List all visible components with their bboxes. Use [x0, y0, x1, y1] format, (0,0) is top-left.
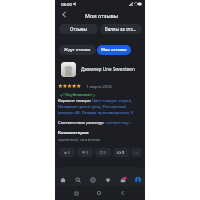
button[interactable]: Поиск [70, 170, 85, 186]
staticText: Комментарии [58, 130, 89, 136]
staticText: Опубликован [65, 92, 92, 98]
staticText: Мои отзывы [85, 12, 119, 19]
button[interactable]: Фото [113, 148, 129, 157]
button[interactable]: Ждут отзыва [59, 45, 96, 55]
button[interactable]: Главная [55, 170, 70, 186]
staticText: Джемпер Line Seventeen [81, 66, 135, 72]
staticText: Вариант товара: Цвет товара: серый, Назв… [58, 98, 142, 116]
staticText: 0 [68, 150, 71, 155]
button[interactable]: Профиль [130, 170, 145, 186]
button[interactable]: Опубликован [60, 92, 95, 98]
button[interactable]: Джемпер Line Seventeen [81, 66, 143, 72]
staticText: Отзывы [70, 26, 88, 32]
button[interactable]: Каталог [85, 170, 100, 186]
button[interactable]: Баллы за отз… [100, 24, 142, 34]
staticText: приятный, синтетика [58, 137, 101, 143]
staticText: Ждут отзыва [64, 47, 91, 53]
button[interactable]: Нравится [59, 148, 75, 157]
button[interactable]: Соответствие размеру: соответству… [58, 120, 142, 126]
button[interactable]: Мои отзывы [97, 45, 131, 55]
staticText: 08:00 [61, 1, 72, 7]
staticText: 0 [104, 150, 107, 155]
staticText: 1 марта 2026 [86, 84, 112, 90]
button[interactable]: Назад [59, 10, 68, 19]
staticText: Мои отзывы [101, 47, 127, 53]
button[interactable]: Отзывы [59, 24, 98, 34]
staticText: Баллы за отз… [105, 26, 137, 32]
button[interactable]: Не нравится [77, 148, 93, 157]
button[interactable]: Избранное [100, 170, 115, 186]
button[interactable]: Ещё [131, 148, 142, 157]
staticText: 0 [86, 150, 89, 155]
button[interactable]: Назад [118, 189, 126, 197]
button[interactable]: Комментарии [95, 148, 111, 157]
button[interactable]: Фото товара [61, 62, 76, 77]
staticText: 1 [122, 150, 125, 155]
button[interactable]: Корзина [115, 170, 130, 186]
button[interactable]: Домой [95, 189, 103, 197]
button[interactable]: Недавние [72, 189, 80, 197]
